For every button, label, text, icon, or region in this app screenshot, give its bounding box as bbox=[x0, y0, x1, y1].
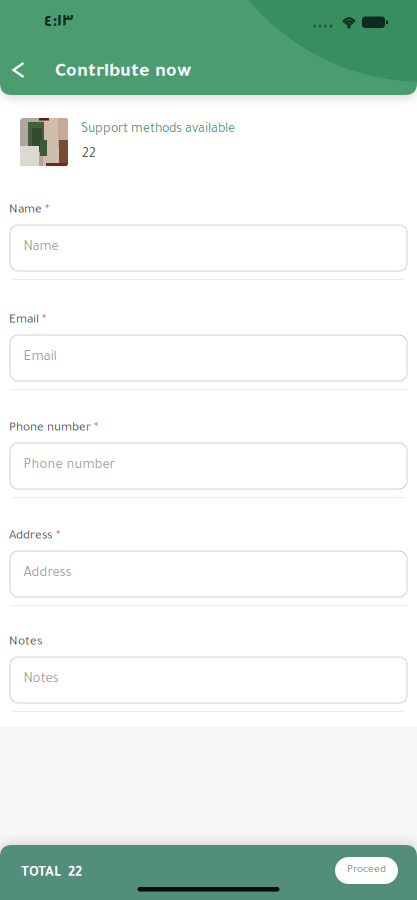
staticText: Phone number bbox=[23, 459, 115, 473]
staticText: ٤:١٣ bbox=[44, 14, 73, 33]
staticText: Phone number bbox=[9, 422, 91, 435]
staticText: Name bbox=[9, 204, 42, 217]
staticText: Email bbox=[9, 314, 39, 327]
staticText: * bbox=[94, 422, 98, 435]
staticText: 22 bbox=[68, 866, 82, 881]
staticText: Proceed bbox=[347, 865, 386, 876]
staticText: Contribute now bbox=[55, 63, 191, 83]
button[interactable]: Name bbox=[10, 225, 407, 271]
button[interactable]: Address bbox=[10, 551, 407, 597]
button[interactable]: Proceed bbox=[335, 857, 398, 884]
staticText: 22 bbox=[82, 148, 96, 162]
staticText: Address bbox=[9, 530, 53, 543]
staticText: Notes bbox=[23, 673, 58, 687]
staticText: Name bbox=[23, 241, 58, 255]
staticText: TOTAL bbox=[21, 866, 61, 881]
button[interactable]: Notes bbox=[10, 657, 407, 703]
button[interactable]: Phone number bbox=[10, 443, 407, 489]
staticText: Support methods available bbox=[81, 123, 235, 137]
staticText: Address bbox=[23, 567, 71, 581]
staticText: * bbox=[56, 530, 60, 543]
button[interactable]: Email bbox=[10, 335, 407, 381]
button[interactable]: Back bbox=[0, 55, 23, 85]
staticText: * bbox=[42, 314, 46, 327]
staticText: Notes bbox=[9, 636, 43, 649]
staticText: * bbox=[45, 204, 49, 217]
staticText: Email bbox=[23, 351, 56, 365]
